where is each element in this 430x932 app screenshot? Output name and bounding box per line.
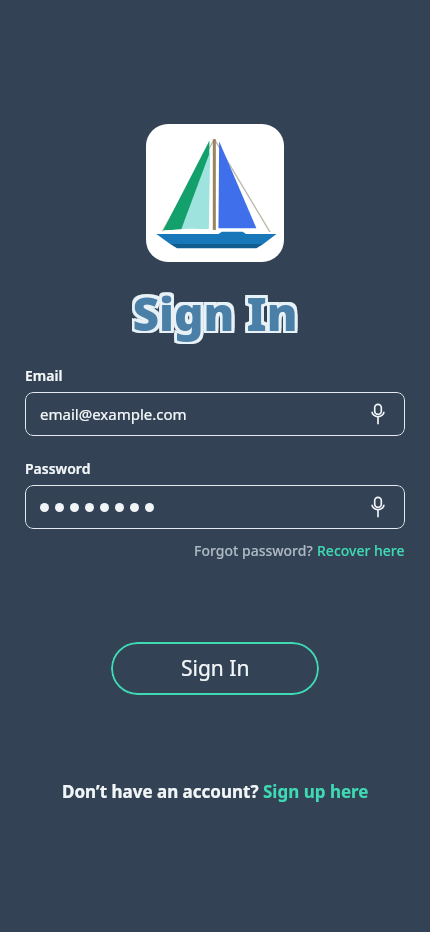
staticText: Forgot password? xyxy=(194,541,317,560)
button[interactable]: Voice input xyxy=(25,485,405,529)
button[interactable]: Sign In xyxy=(111,642,319,695)
staticText: Don’t have an account? xyxy=(62,780,263,803)
button[interactable]: Recover here xyxy=(317,541,405,560)
staticText: Sign In xyxy=(181,654,250,683)
button[interactable]: Voice input xyxy=(365,401,391,427)
button[interactable]: Voice input xyxy=(365,494,391,520)
staticText: Sign up here xyxy=(263,780,369,803)
button[interactable]: Sign up here xyxy=(263,780,369,803)
staticText: email@example.com xyxy=(40,404,187,424)
staticText: Password xyxy=(25,459,91,478)
button[interactable]: email@example.com xyxy=(25,392,405,436)
staticText: Recover here xyxy=(317,541,405,560)
staticText: Email xyxy=(25,366,63,385)
